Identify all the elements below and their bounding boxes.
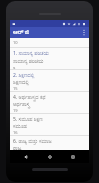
staticText: 9	[13, 66, 16, 69]
staticText: ಸಾಮಾನ್ಯ ಪರಿಚಯ	[13, 58, 44, 65]
staticText: 6. ರಾಜ್ಯ ಮತ್ತು ಸಮಾಜ	[13, 138, 52, 145]
button[interactable]: 6. ರಾಜ್ಯ ಮತ್ತು ಸಮಾಜ	[10, 136, 89, 150]
staticText: 15	[13, 86, 18, 91]
staticText: ಅರ್ಥಶಾಸ್ತ್ರ	[13, 102, 30, 107]
staticText: 2. ಶಿಕ್ಷಣದಲ್ಲಿ	[13, 72, 35, 79]
staticText: ಸಮೂಹ	[13, 124, 28, 129]
button[interactable]: 4. ಅರ್ಥಶಾಸ್ತ್ರದ ಕಥೆ	[10, 92, 89, 113]
staticText: 1. ಸಾಮಾನ್ಯ ಪರಿಚಯ	[13, 50, 49, 57]
button[interactable]: Home	[43, 150, 57, 163]
button[interactable]: 1. ಸಾಮಾನ್ಯ ಪರಿಚಯ	[10, 48, 89, 69]
button[interactable]: More options	[80, 27, 88, 38]
button[interactable]: 5. ಸಮೂಹ ಶಿಕ್ಷಣ	[10, 114, 89, 135]
staticText: ರಾಜ್ಯ	[13, 146, 22, 150]
button[interactable]: Back	[19, 150, 33, 163]
staticText: ಶಿಕ್ಷಣದಲ್ಲಿ	[13, 80, 30, 85]
staticText: 5. ಸಮೂಹ ಶಿಕ್ಷಣ	[13, 116, 43, 123]
staticText: 16	[13, 130, 18, 135]
staticText: 10	[13, 40, 18, 45]
staticText: 4. ಅರ್ಥಶಾಸ್ತ್ರದ ಕಥೆ	[13, 94, 46, 101]
button[interactable]: Recent apps	[66, 150, 80, 163]
staticText: 19	[13, 108, 18, 113]
staticText: ಆರ್ ಜಿ	[13, 28, 30, 37]
button[interactable]: 2. ಶಿಕ್ಷಣದಲ್ಲಿ	[10, 70, 89, 91]
